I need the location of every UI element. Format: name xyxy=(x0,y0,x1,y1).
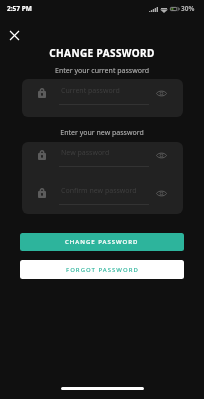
staticText: FORGOT PASSWORD xyxy=(66,266,139,274)
staticText: New password xyxy=(61,148,110,158)
button[interactable]: Close xyxy=(3,24,25,46)
staticText: 30% xyxy=(181,4,195,13)
button[interactable]: Show password xyxy=(154,148,168,162)
staticText: Confirm new password xyxy=(61,186,137,196)
button[interactable]: FORGOT PASSWORD xyxy=(20,260,184,279)
staticText: 2:57 PM xyxy=(7,4,32,13)
staticText: Enter your new password xyxy=(60,128,144,138)
button[interactable]: CHANGE PASSWORD xyxy=(20,233,184,251)
staticText: Current password xyxy=(61,86,120,96)
staticText: CHANGE PASSWORD xyxy=(49,46,155,60)
button[interactable]: Show password xyxy=(154,86,168,100)
button[interactable]: Show password xyxy=(154,186,168,200)
staticText: CHANGE PASSWORD xyxy=(65,238,139,246)
staticText: Enter your current password xyxy=(55,66,149,76)
